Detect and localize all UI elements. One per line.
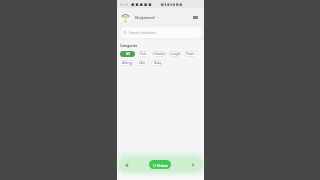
staticText: Fever [186,52,195,56]
staticText: All [126,52,130,56]
button[interactable]: Orders [149,160,171,169]
button[interactable]: Profile [187,159,198,170]
staticText: Search medicines... [129,31,158,35]
staticText: Baby [154,61,162,65]
button[interactable]: Allergy [120,60,134,66]
button[interactable]: All [120,51,135,57]
button[interactable]: Fever [184,51,197,57]
button[interactable]: Home [121,159,132,170]
staticText: Pain [140,52,147,56]
button[interactable]: Menu [192,14,199,21]
button[interactable]: Skin [137,60,148,66]
staticText: Cough [170,52,180,56]
button[interactable]: Pain [138,51,149,57]
staticText: Allergy [122,61,133,65]
button[interactable]: Cough [169,51,181,57]
staticText: Skin [139,61,146,65]
button[interactable]: Baby [151,60,164,66]
button[interactable]: Search medicines... [120,27,202,38]
staticText: Categories [120,44,138,48]
staticText: Naijamed [135,15,155,21]
staticText: Orders [157,163,168,167]
staticText: Vitamins [153,52,166,56]
button[interactable]: Vitamins [152,51,166,57]
